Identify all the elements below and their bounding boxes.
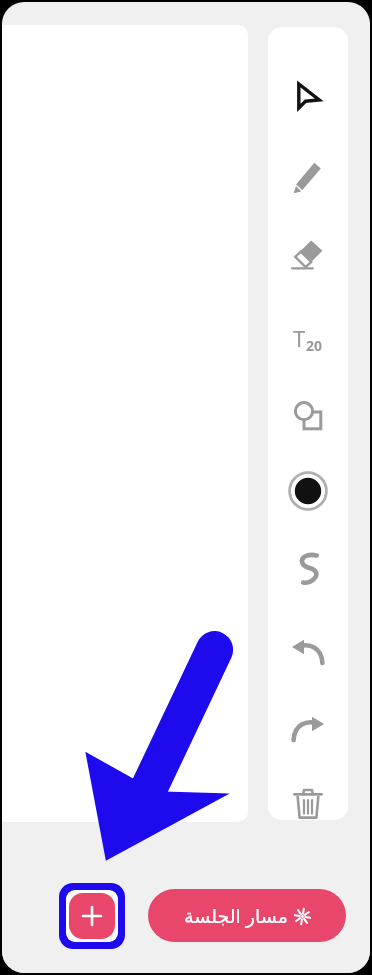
- button[interactable]: Select: [268, 69, 348, 127]
- button[interactable]: مسار الجلسة: [148, 889, 346, 942]
- button[interactable]: Eraser: [268, 225, 348, 283]
- button[interactable]: Text size 20: [268, 309, 348, 367]
- button[interactable]: Delete: [268, 775, 348, 820]
- staticText: مسار الجلسة: [184, 903, 288, 929]
- button[interactable]: Shapes: [268, 387, 348, 445]
- button[interactable]: Lasso: [268, 540, 348, 598]
- button[interactable]: Colour: [268, 462, 348, 520]
- button[interactable]: Undo: [268, 622, 348, 680]
- staticText: 20: [306, 336, 323, 355]
- button[interactable]: Add: [69, 893, 115, 939]
- staticText: T: [293, 323, 306, 353]
- button[interactable]: Redo: [268, 699, 348, 757]
- button[interactable]: Pen: [268, 149, 348, 207]
- button[interactable]: [2, 25, 248, 822]
